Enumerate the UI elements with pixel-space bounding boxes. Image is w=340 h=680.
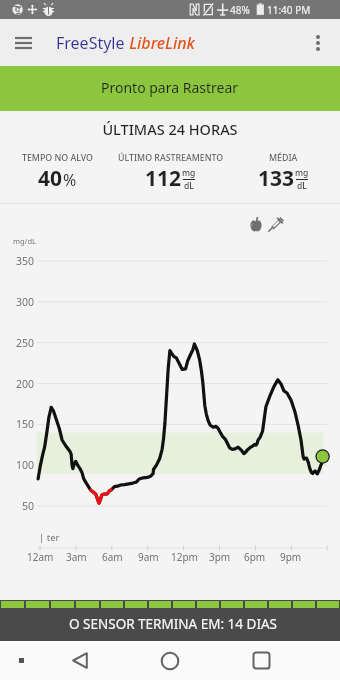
staticText: 133 [258,164,295,193]
button[interactable]: Recent apps [242,641,280,680]
staticText: 48% [230,3,250,17]
staticText: 3am [66,550,87,564]
staticText: mg [295,167,309,179]
staticText: 40 [38,164,63,193]
button[interactable]: Home [151,641,189,680]
staticText: mg [182,167,196,179]
staticText: 200 [16,377,35,391]
staticText: Pronto para Rastrear [101,78,239,97]
staticText: 3pm [209,550,231,564]
staticText: FreeStyle [56,32,125,54]
button[interactable]: Food log [250,217,262,232]
button[interactable]: Menu [0,20,46,66]
staticText: 9pm [280,550,302,564]
staticText: O SENSOR TERMINA EM: 14 DIAS [69,615,278,633]
staticText: LibreLink [125,32,195,54]
staticText: TEMPO NO ALVO [22,152,93,164]
staticText: 112 [145,164,182,193]
staticText: mg/dL [13,236,36,246]
staticText: 150 [16,417,35,431]
staticText: ÚLTIMAS 24 HORAS [0,119,340,139]
staticText: 50 [22,499,35,513]
staticText: dL [297,180,307,192]
button[interactable]: Hide keyboard [9,641,33,680]
button[interactable]: Back [61,641,99,680]
staticText: 11:40 PM [267,3,311,17]
staticText: % [63,169,77,191]
staticText: 9am [138,550,159,564]
staticText: 250 [16,336,35,350]
button[interactable]: O SENSOR TERMINA EM: 14 DIAS [0,608,340,641]
staticText: 100 [16,458,35,472]
staticText: 350 [16,254,35,268]
staticText: 12pm [171,550,198,564]
staticText: dL [184,180,194,192]
staticText: 300 [16,295,35,309]
button[interactable]: Insulin log [268,216,284,232]
staticText: 6am [102,550,123,564]
staticText: MÉDIA [269,152,298,164]
button[interactable]: Pronto para Rastrear [0,66,340,111]
button[interactable]: More options [296,21,340,65]
staticText: 6pm [244,550,266,564]
staticText: ÚLTIMO RASTREAMENTO [118,152,224,164]
staticText: 12am [27,550,54,564]
staticText: | ter [39,531,60,544]
